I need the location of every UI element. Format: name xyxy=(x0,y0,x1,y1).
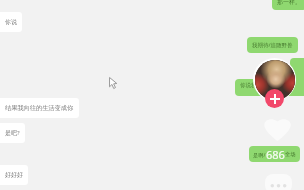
staticText: 686 xyxy=(266,147,285,162)
button[interactable]: 你说我们在 xyxy=(235,79,304,96)
staticText: 是啊/ xyxy=(253,151,266,158)
button[interactable]: Like xyxy=(264,117,291,141)
staticText: 你说 xyxy=(5,18,17,26)
button[interactable]: 那一样。 xyxy=(272,0,304,10)
button[interactable]: 我期待/追随野兽 xyxy=(247,37,298,53)
button[interactable]: 好好好 xyxy=(0,165,28,185)
button[interactable]: 是啊/ xyxy=(249,146,300,162)
button[interactable]: 结果我向往的生活变成你 xyxy=(0,98,79,118)
button[interactable]: 你说 xyxy=(0,12,22,32)
button[interactable]: Follow xyxy=(265,89,284,108)
staticText: 是吧? xyxy=(5,129,20,137)
button[interactable] xyxy=(290,58,304,80)
button[interactable]: Comment xyxy=(265,174,292,190)
staticText: 你说我们在 xyxy=(240,82,268,89)
staticText: 我期待/追随野兽 xyxy=(252,41,293,49)
button[interactable]: Avatar xyxy=(253,58,296,101)
staticText: 全场 xyxy=(285,151,296,158)
staticText: 结果我向往的生活变成你 xyxy=(5,104,74,112)
staticText: 好好好 xyxy=(5,171,23,179)
staticText: 那一样。 xyxy=(277,0,301,6)
button[interactable]: 是吧? xyxy=(0,123,25,143)
